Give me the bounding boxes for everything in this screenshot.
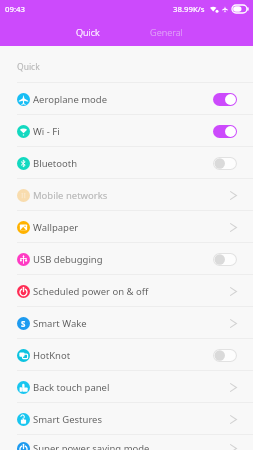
button[interactable]: Smart Gestures: [0, 403, 253, 435]
staticText: Quick: [17, 61, 40, 73]
staticText: HotKnot: [33, 349, 212, 362]
button[interactable]: Bluetooth: [0, 147, 253, 179]
staticText: Wi - Fi: [33, 125, 212, 138]
staticText: Super power saving mode: [33, 442, 230, 450]
staticText: Quick: [76, 26, 100, 39]
staticText: Back touch panel: [33, 381, 230, 394]
staticText: Wallpaper: [33, 221, 230, 234]
staticText: Scheduled power on & off: [33, 285, 230, 298]
button[interactable]: Quick: [49, 18, 127, 46]
button[interactable]: [212, 348, 237, 362]
staticText: Aeroplane mode: [33, 93, 212, 106]
button[interactable]: [212, 124, 237, 138]
button[interactable]: [212, 252, 237, 266]
button[interactable]: Back touch panel: [0, 371, 253, 403]
button[interactable]: Super power saving mode: [0, 435, 253, 450]
button[interactable]: Mobile networks: [0, 179, 253, 211]
staticText: Mobile networks: [33, 189, 230, 202]
staticText: S: [21, 318, 26, 329]
staticText: USB debugging: [33, 253, 212, 266]
staticText: Bluetooth: [33, 157, 212, 170]
button[interactable]: [212, 156, 237, 170]
button[interactable]: HotKnot: [0, 339, 253, 371]
button[interactable]: Wi - Fi: [0, 115, 253, 147]
button[interactable]: USB debugging: [0, 243, 253, 275]
staticText: Smart Wake: [33, 317, 230, 330]
button[interactable]: Scheduled power on & off: [0, 275, 253, 307]
button[interactable]: Aeroplane mode: [0, 83, 253, 115]
button[interactable]: S: [0, 307, 253, 339]
button[interactable]: General: [127, 18, 205, 46]
staticText: 09:43: [5, 4, 25, 15]
staticText: General: [150, 26, 183, 39]
button[interactable]: [212, 92, 237, 106]
staticText: Smart Gestures: [33, 413, 230, 426]
staticText: 38.99K/s: [173, 4, 205, 15]
button[interactable]: Wallpaper: [0, 211, 253, 243]
